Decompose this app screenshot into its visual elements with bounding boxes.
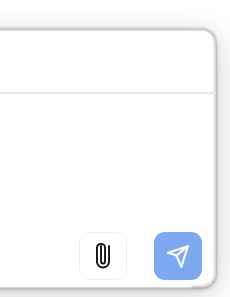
- button[interactable]: Send message: [154, 232, 202, 280]
- button[interactable]: Attach file: [79, 232, 127, 280]
